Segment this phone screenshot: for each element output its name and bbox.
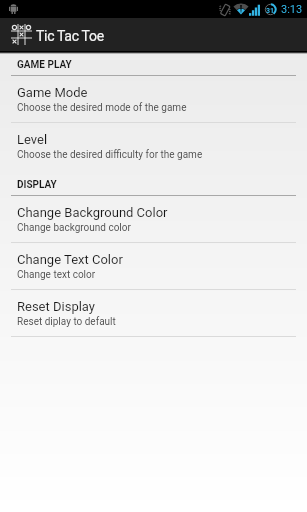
button[interactable]: Change Background Color xyxy=(0,196,307,243)
staticText: GAME PLAY xyxy=(17,59,72,71)
staticText: Reset Display xyxy=(17,299,95,314)
staticText: DISPLAY xyxy=(17,179,57,191)
staticText: Change background color xyxy=(17,222,131,234)
staticText: 31 xyxy=(266,7,275,15)
staticText: 3:13 xyxy=(281,3,303,16)
button[interactable]: Reset Display xyxy=(0,290,307,337)
button[interactable]: Level xyxy=(0,123,307,170)
staticText: Change text color xyxy=(17,269,96,281)
staticText: Change Text Color xyxy=(17,252,123,267)
staticText: Reset diplay to default xyxy=(17,316,116,328)
button[interactable]: Game Mode xyxy=(0,76,307,123)
staticText: Game Mode xyxy=(17,85,88,100)
staticText: Level xyxy=(17,132,48,147)
button[interactable]: Change Text Color xyxy=(0,243,307,290)
staticText: Choose the desired difficulty for the ga… xyxy=(17,149,203,161)
staticText: Change Background Color xyxy=(17,205,168,220)
staticText: Choose the desired mode of the game xyxy=(17,102,187,114)
staticText: Tic Tac Toe xyxy=(36,28,104,44)
